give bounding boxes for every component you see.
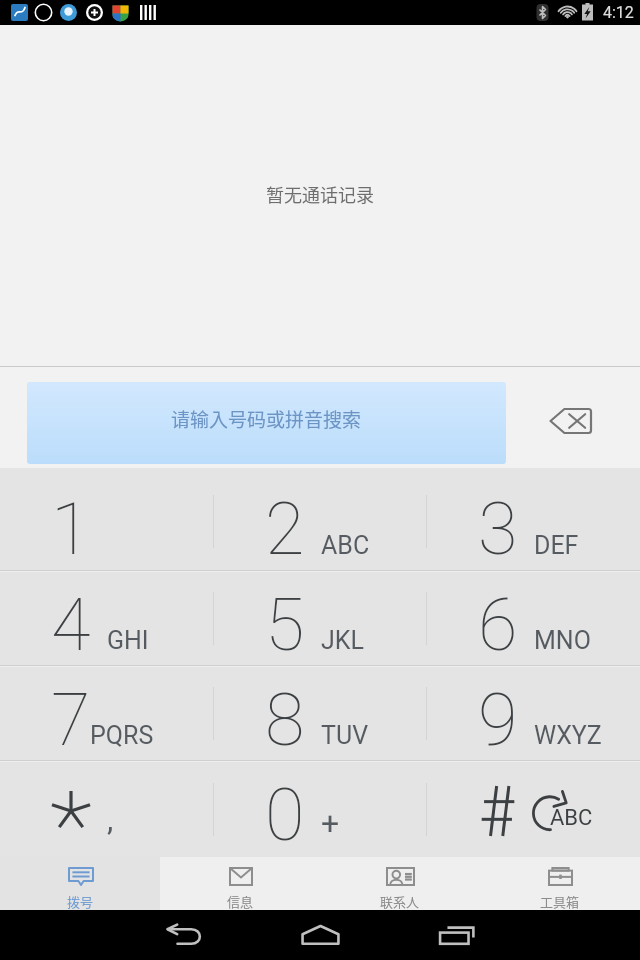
staticText: 4:12 [603, 3, 634, 22]
button[interactable]: 3 [427, 468, 640, 570]
button[interactable]: 0 [214, 762, 427, 856]
button[interactable]: Back [154, 910, 214, 960]
button[interactable]: 工具箱 [480, 857, 640, 910]
button[interactable]: 1 [0, 468, 214, 570]
staticText: + [321, 804, 340, 842]
button[interactable]: 7 [0, 667, 214, 760]
staticText: 8 [265, 678, 305, 762]
staticText: 9 [478, 678, 518, 762]
staticText: , [107, 800, 114, 838]
staticText: 2 [265, 487, 305, 571]
staticText: PQRS [90, 721, 154, 750]
button[interactable]: , [0, 762, 214, 856]
staticText: 请输入号码或拼音搜索 [171, 405, 362, 433]
staticText: ABC [321, 531, 370, 560]
staticText: 7 [51, 678, 91, 762]
button[interactable]: 8 [214, 667, 427, 760]
staticText: GHI [107, 626, 149, 655]
button[interactable]: 2 [214, 468, 427, 570]
staticText: 工具箱 [540, 892, 580, 910]
staticText: 1 [51, 487, 91, 571]
staticText: WXYZ [534, 721, 602, 750]
button[interactable]: 信息 [160, 857, 320, 910]
staticText: TUV [321, 721, 369, 750]
button[interactable]: 请输入号码或拼音搜索 [27, 382, 506, 464]
staticText: MNO [534, 626, 591, 655]
staticText: 信息 [227, 892, 254, 910]
button[interactable]: 4 [0, 572, 214, 665]
staticText: 5 [265, 583, 305, 667]
button[interactable]: 5 [214, 572, 427, 665]
button[interactable]: Backspace [535, 398, 605, 444]
button[interactable]: Recents [427, 910, 487, 960]
staticText: 联系人 [380, 892, 420, 910]
button[interactable]: Home [290, 910, 350, 960]
staticText: JKL [321, 626, 364, 655]
button[interactable]: 联系人 [320, 857, 480, 910]
staticText: 4 [51, 583, 91, 667]
staticText: 6 [478, 583, 518, 667]
staticText: 拨号 [67, 892, 94, 910]
staticText: ABC [550, 805, 593, 831]
staticText: 3 [478, 487, 518, 571]
staticText: DEF [534, 531, 579, 560]
staticText: 0 [265, 773, 305, 857]
button[interactable]: ABC [427, 762, 640, 856]
button[interactable]: 9 [427, 667, 640, 760]
button[interactable]: 6 [427, 572, 640, 665]
button[interactable]: 拨号 [0, 857, 160, 910]
staticText: 暂无通话记录 [266, 181, 374, 207]
